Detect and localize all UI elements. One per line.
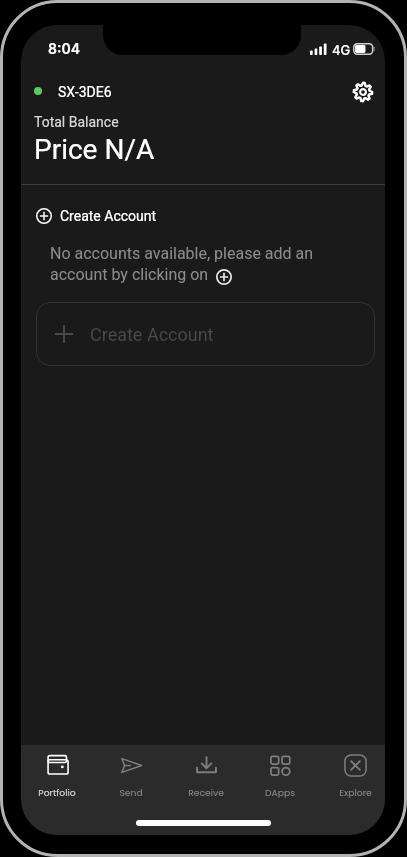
- button[interactable]: Create Account: [36, 302, 375, 366]
- button[interactable]: Send: [100, 754, 162, 799]
- staticText: 8:04: [48, 40, 80, 57]
- staticText: SX-3DE6: [58, 84, 112, 100]
- button[interactable]: DApps: [249, 754, 311, 799]
- button[interactable]: Settings: [347, 76, 378, 107]
- staticText: 4G: [332, 42, 351, 58]
- staticText: Total Balance: [34, 114, 119, 130]
- staticText: No accounts available, please add an acc…: [50, 244, 314, 284]
- button[interactable]: Receive: [175, 754, 237, 799]
- staticText: Create Account: [60, 208, 157, 224]
- button[interactable]: Create Account: [36, 208, 157, 224]
- staticText: Explore: [339, 786, 372, 799]
- staticText: Receive: [188, 786, 224, 799]
- button[interactable]: Portfolio: [26, 754, 88, 799]
- staticText: Portfolio: [38, 786, 76, 799]
- staticText: DApps: [265, 786, 295, 799]
- staticText: Send: [119, 786, 143, 799]
- button[interactable]: Explore: [324, 754, 385, 799]
- staticText: Price N/A: [34, 133, 155, 166]
- staticText: Create Account: [90, 324, 214, 345]
